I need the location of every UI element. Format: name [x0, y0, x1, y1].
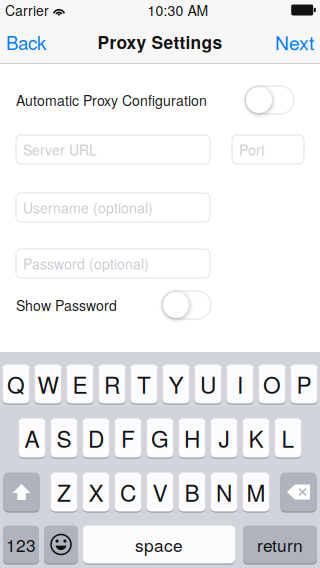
button[interactable]: Back — [0, 20, 68, 64]
staticText: O — [263, 368, 281, 400]
button[interactable]: C — [114, 472, 141, 512]
button[interactable]: X — [82, 472, 109, 512]
button[interactable]: J — [210, 418, 237, 458]
staticText: B — [184, 476, 199, 508]
staticText: Username (optional) — [23, 197, 153, 217]
button[interactable]: A — [18, 418, 45, 458]
staticText: K — [248, 422, 263, 454]
button[interactable]: Emoji — [44, 525, 78, 564]
button[interactable]: V — [146, 472, 173, 512]
button[interactable]: Q — [2, 364, 29, 404]
staticText: return — [257, 532, 303, 557]
button[interactable]: I — [226, 364, 253, 404]
staticText: Password (optional) — [23, 253, 149, 273]
button[interactable]: Password (optional) — [16, 249, 210, 278]
staticText: Q — [7, 368, 25, 400]
button[interactable]: O — [258, 364, 285, 404]
button[interactable]: Username (optional) — [16, 193, 210, 222]
staticText: Back — [6, 29, 46, 55]
button[interactable]: Next — [252, 20, 320, 64]
staticText: Y — [168, 368, 183, 400]
button[interactable]: Shift — [3, 472, 39, 512]
staticText: 123 — [6, 532, 36, 557]
button[interactable]: E — [66, 364, 93, 404]
button[interactable]: G — [146, 418, 173, 458]
button[interactable]: return — [243, 525, 317, 564]
staticText: Automatic Proxy Configuration — [16, 90, 207, 110]
staticText: A — [24, 422, 39, 454]
button[interactable]: space — [83, 525, 235, 564]
button[interactable]: R — [98, 364, 125, 404]
staticText: I — [237, 368, 243, 400]
button[interactable]: W — [34, 364, 61, 404]
button[interactable]: L — [274, 418, 301, 458]
staticText: E — [72, 368, 87, 400]
button[interactable]: U — [194, 364, 221, 404]
staticText: H — [184, 422, 200, 454]
staticText: Carrier — [5, 0, 49, 20]
staticText: C — [120, 476, 136, 508]
button[interactable]: F — [114, 418, 141, 458]
button[interactable]: T — [130, 364, 157, 404]
staticText: Port — [239, 139, 265, 159]
button[interactable]: S — [50, 418, 77, 458]
staticText: Next — [275, 28, 314, 56]
staticText: S — [56, 422, 71, 454]
button[interactable]: Delete — [280, 472, 316, 512]
staticText: N — [216, 476, 232, 508]
button[interactable]: N — [210, 472, 237, 512]
staticText: J — [218, 422, 229, 454]
staticText: V — [152, 476, 167, 508]
button[interactable]: Y — [162, 364, 189, 404]
staticText: T — [137, 368, 151, 400]
staticText: R — [104, 368, 120, 400]
staticText: U — [200, 368, 216, 400]
button[interactable]: Switch, off — [162, 291, 211, 319]
button[interactable]: D — [82, 418, 109, 458]
button[interactable]: H — [178, 418, 205, 458]
staticText: Z — [57, 476, 71, 508]
button[interactable]: B — [178, 472, 205, 512]
button[interactable]: Numbers and symbols — [3, 525, 39, 564]
staticText: G — [151, 422, 169, 454]
button[interactable]: Server URL — [16, 135, 210, 164]
staticText: F — [121, 422, 135, 454]
staticText: W — [37, 368, 58, 400]
button[interactable]: K — [242, 418, 269, 458]
button[interactable]: P — [290, 364, 317, 404]
button[interactable]: M — [242, 472, 269, 512]
staticText: 10:30 AM — [147, 0, 208, 20]
button[interactable]: Switch, off — [245, 86, 294, 114]
button[interactable]: Z — [50, 472, 77, 512]
staticText: Proxy Settings — [97, 30, 222, 54]
staticText: X — [88, 476, 103, 508]
staticText: M — [246, 476, 265, 508]
staticText: Server URL — [23, 139, 97, 159]
staticText: P — [296, 368, 311, 400]
staticText: L — [281, 422, 294, 454]
staticText: D — [88, 422, 104, 454]
staticText: Show Password — [16, 295, 117, 315]
button[interactable]: Port — [232, 135, 304, 164]
staticText: space — [135, 532, 183, 557]
